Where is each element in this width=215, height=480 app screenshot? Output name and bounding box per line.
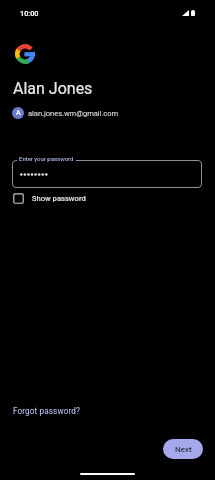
- button[interactable]: Forgot password?: [13, 406, 80, 416]
- staticText: 10:00: [20, 9, 39, 18]
- button[interactable]: Show password: [13, 193, 86, 204]
- staticText: Next: [175, 445, 192, 454]
- staticText: alan.jones.wm@gmail.com: [28, 109, 119, 118]
- button[interactable]: Enter your password: [12, 160, 202, 188]
- button[interactable]: A: [12, 107, 119, 119]
- staticText: A: [16, 109, 21, 117]
- button[interactable]: Next: [163, 439, 203, 459]
- staticText: Alan Jones: [13, 79, 93, 98]
- staticText: Show password: [32, 194, 86, 203]
- staticText: Enter your password: [19, 155, 74, 162]
